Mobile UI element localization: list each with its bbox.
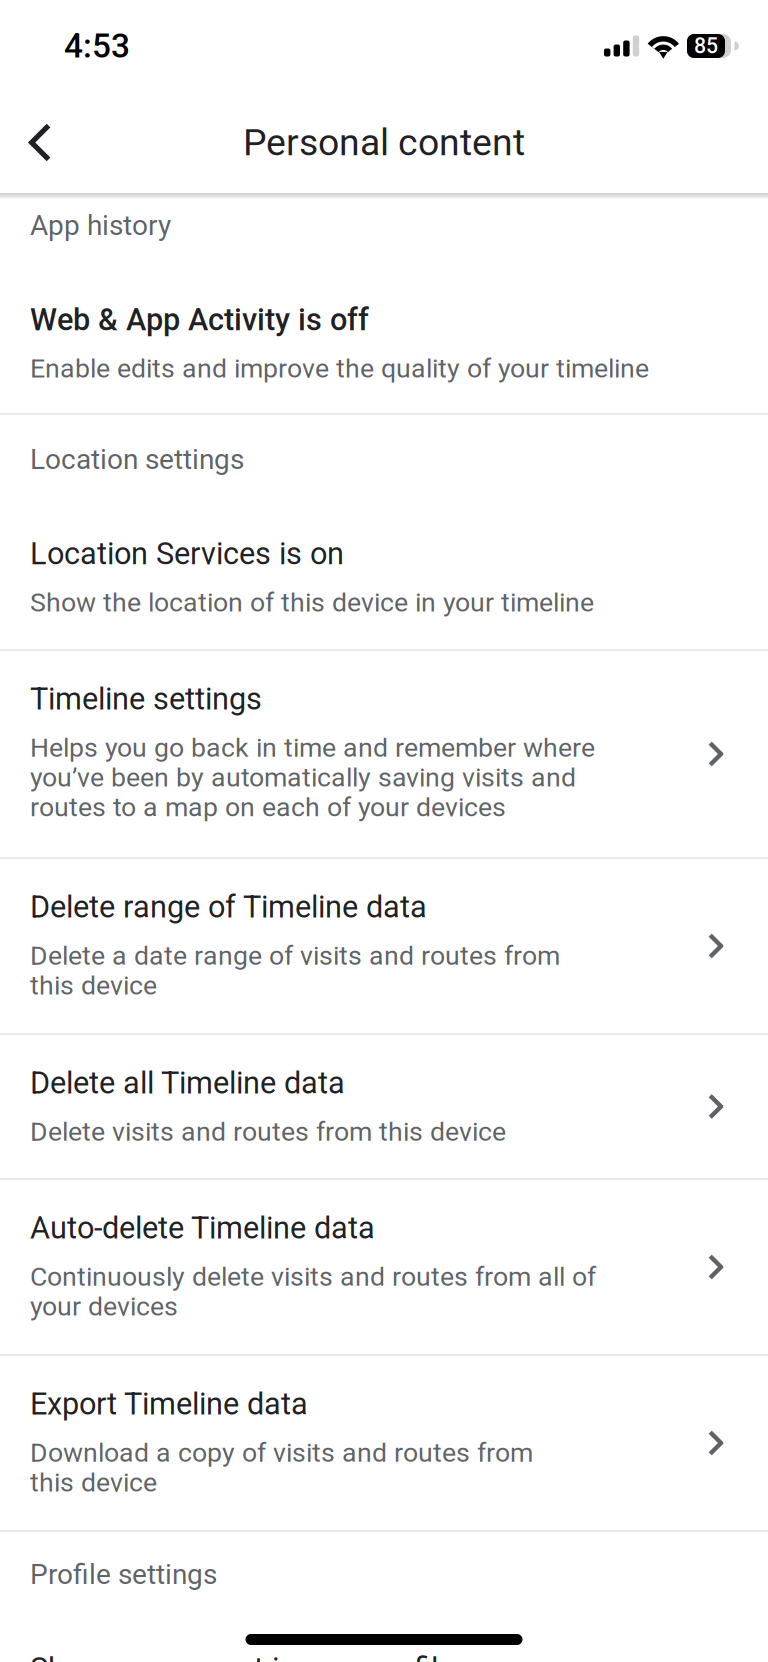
staticText: Show the location of this device in your… xyxy=(30,587,594,618)
staticText: Location Services is on xyxy=(30,536,344,572)
staticText: Personal content xyxy=(243,121,525,164)
button[interactable]: Auto-delete Timeline data xyxy=(0,1180,768,1354)
staticText: Location settings xyxy=(30,443,244,476)
staticText: Profile settings xyxy=(30,1558,217,1591)
staticText: Export Timeline data xyxy=(30,1386,308,1422)
staticText: Continuously delete visits and routes fr… xyxy=(30,1261,596,1322)
staticText: Delete visits and routes from this devic… xyxy=(30,1116,506,1147)
staticText: Delete all Timeline data xyxy=(30,1065,345,1101)
button[interactable]: Profile settings xyxy=(0,1532,768,1662)
button[interactable]: Export Timeline data xyxy=(0,1356,768,1530)
staticText: 85 xyxy=(694,33,718,58)
button[interactable]: Location settings xyxy=(0,415,768,649)
staticText: Download a copy of visits and routes fro… xyxy=(30,1437,533,1498)
staticText: Helps you go back in time and remember w… xyxy=(30,732,595,823)
staticText: Timeline settings xyxy=(30,681,262,717)
staticText: Enable edits and improve the quality of … xyxy=(30,353,649,384)
staticText: App history xyxy=(30,209,171,242)
button[interactable]: Timeline settings xyxy=(0,651,768,857)
button[interactable]: Back xyxy=(11,100,69,184)
button[interactable]: App history xyxy=(0,199,768,413)
button[interactable]: Delete all Timeline data xyxy=(0,1035,768,1178)
staticText: Web & App Activity is off xyxy=(30,302,369,338)
staticText: Delete range of Timeline data xyxy=(30,889,427,925)
staticText: Auto-delete Timeline data xyxy=(30,1210,375,1246)
staticText: Show your recent in your profile xyxy=(30,1651,454,1662)
staticText: Delete a date range of visits and routes… xyxy=(30,940,560,1001)
button[interactable]: Delete range of Timeline data xyxy=(0,859,768,1033)
staticText: 4:53 xyxy=(64,26,130,66)
